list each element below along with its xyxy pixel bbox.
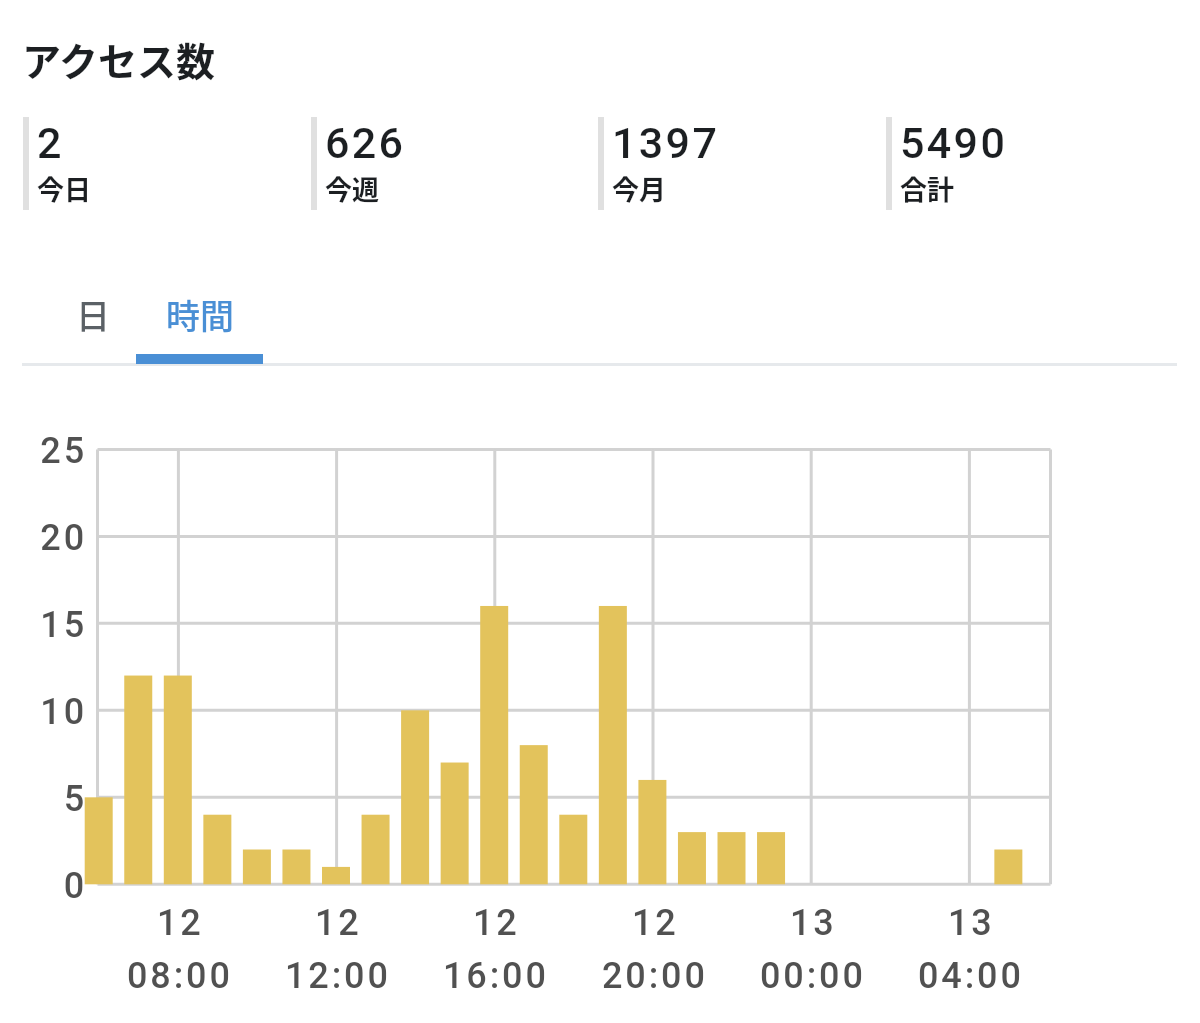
staticText: 10 (40, 691, 87, 733)
staticText: 5 (63, 778, 87, 820)
staticText: アクセス数 (22, 31, 216, 87)
staticText: 15 (40, 604, 87, 646)
button[interactable]: 626 (311, 117, 591, 210)
staticText: 今日 (37, 169, 91, 208)
staticText: 13 (948, 902, 995, 944)
staticText: 20 (40, 517, 87, 559)
staticText: 20:00 (602, 955, 708, 997)
staticText: 626 (325, 118, 406, 168)
staticText: 12 (157, 902, 204, 944)
staticText: 12 (315, 902, 362, 944)
staticText: 日 (76, 290, 110, 339)
staticText: 25 (40, 430, 87, 472)
staticText: 2 (37, 118, 64, 168)
staticText: 12:00 (285, 955, 391, 997)
button[interactable]: 5490 (886, 117, 1166, 210)
button[interactable]: 2 (23, 117, 303, 210)
staticText: 今週 (325, 169, 379, 208)
staticText: 0 (63, 865, 87, 907)
staticText: 時間 (166, 290, 234, 339)
staticText: 合計 (900, 169, 954, 208)
staticText: 13 (790, 902, 837, 944)
staticText: 1397 (612, 118, 720, 168)
button[interactable]: 日 (39, 282, 146, 364)
staticText: 5490 (900, 118, 1008, 168)
staticText: 今月 (612, 169, 666, 208)
staticText: 12 (473, 902, 520, 944)
staticText: 08:00 (127, 955, 233, 997)
button[interactable]: 時間 (146, 282, 253, 364)
button[interactable]: 1397 (598, 117, 878, 210)
staticText: 12 (632, 902, 679, 944)
other: Hourly access bar chart (0, 0, 1200, 1023)
staticText: 16:00 (443, 955, 549, 997)
staticText: 04:00 (918, 955, 1024, 997)
staticText: 00:00 (760, 955, 866, 997)
